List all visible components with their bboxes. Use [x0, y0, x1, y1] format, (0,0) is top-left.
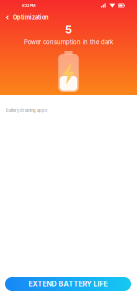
staticText: battery draining apps [6, 108, 47, 113]
staticText: Power consumption in the dark [24, 38, 113, 46]
staticText: EXTEND BATTERY LIFE [28, 280, 107, 288]
staticText: 5 [65, 23, 72, 36]
staticText: Optimization [13, 14, 48, 21]
button[interactable]: EXTEND BATTERY LIFE [5, 277, 131, 291]
button[interactable]: Back [0, 11, 13, 24]
staticText: 6:23 PM [22, 3, 36, 8]
